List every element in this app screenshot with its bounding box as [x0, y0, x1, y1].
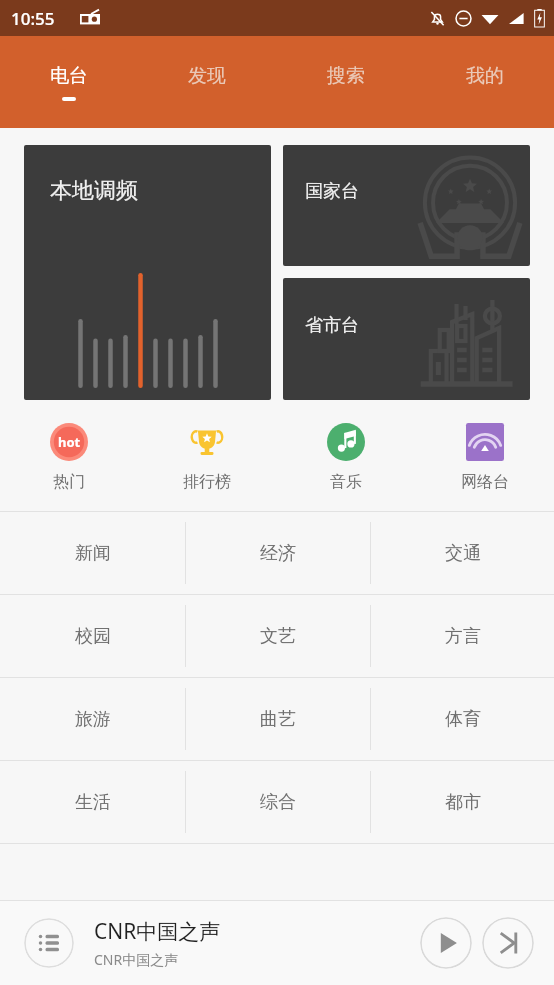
staticText: 搜索 — [327, 64, 365, 88]
button[interactable]: 新闻 — [0, 512, 185, 594]
button[interactable]: 本地调频 — [24, 145, 271, 400]
button[interactable]: 播放 — [420, 917, 472, 969]
staticText: CNR中国之声 — [94, 950, 179, 969]
button[interactable]: 电台 — [0, 36, 138, 128]
button[interactable]: 生活 — [0, 761, 185, 843]
button[interactable]: 曲艺 — [186, 678, 370, 760]
staticText: 都市 — [445, 791, 481, 814]
staticText: 我的 — [466, 64, 504, 88]
button[interactable]: 方言 — [371, 595, 554, 677]
button[interactable]: 都市 — [371, 761, 554, 843]
button[interactable]: 文艺 — [186, 595, 370, 677]
staticText: 交通 — [445, 542, 481, 565]
button[interactable]: 音乐 — [276, 422, 415, 492]
button[interactable]: 省市台 — [283, 278, 530, 400]
button[interactable]: 播放列表 — [24, 918, 74, 968]
button[interactable]: 综合 — [186, 761, 370, 843]
staticText: 音乐 — [330, 472, 362, 492]
button[interactable]: 旅游 — [0, 678, 185, 760]
staticText: 方言 — [445, 625, 481, 648]
button[interactable]: 交通 — [371, 512, 554, 594]
button[interactable]: 搜索 — [276, 36, 415, 128]
staticText: 曲艺 — [260, 708, 296, 731]
staticText: 发现 — [188, 64, 226, 88]
staticText: CNR中国之声 — [94, 917, 221, 946]
staticText: 旅游 — [75, 708, 111, 731]
staticText: 综合 — [260, 791, 296, 814]
button[interactable]: 国家台 — [283, 145, 530, 266]
staticText: 10:55 — [11, 7, 55, 30]
staticText: 网络台 — [461, 472, 509, 492]
button[interactable]: 我的 — [415, 36, 554, 128]
staticText: 经济 — [260, 542, 296, 565]
button[interactable]: 校园 — [0, 595, 185, 677]
staticText: 排行榜 — [183, 472, 231, 492]
button[interactable]: 下一个 — [482, 917, 534, 969]
staticText: 新闻 — [75, 542, 111, 565]
staticText: 文艺 — [260, 625, 296, 648]
button[interactable]: 网络台 — [415, 422, 554, 492]
staticText: 电台 — [50, 64, 88, 88]
staticText: 体育 — [445, 708, 481, 731]
staticText: 校园 — [75, 625, 111, 648]
staticText: 生活 — [75, 791, 111, 814]
button[interactable]: 发现 — [138, 36, 276, 128]
staticText: 国家台 — [305, 180, 359, 203]
button[interactable]: 经济 — [186, 512, 370, 594]
button[interactable]: 体育 — [371, 678, 554, 760]
staticText: hot — [58, 433, 81, 451]
staticText: 省市台 — [305, 314, 359, 337]
staticText: 本地调频 — [50, 177, 138, 205]
button[interactable]: hot — [0, 422, 138, 492]
button[interactable]: CNR中国之声 — [94, 917, 420, 969]
staticText: 热门 — [53, 472, 85, 492]
button[interactable]: 排行榜 — [138, 422, 276, 492]
